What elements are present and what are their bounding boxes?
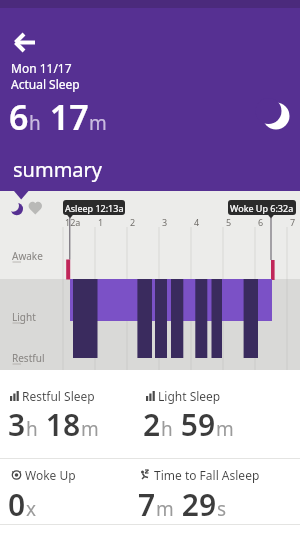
staticText: 6 [258,216,264,228]
staticText: m [89,110,107,136]
staticText: summary [13,156,103,183]
staticText: Restful Sleep [22,388,95,404]
staticText: h [161,416,173,442]
staticText: 0 [8,484,26,525]
staticText: Light [12,310,36,324]
button[interactable] [27,200,45,218]
staticText: 12a [65,216,81,228]
staticText: x [26,496,37,522]
staticText: 18 [38,404,81,445]
button[interactable] [5,200,27,218]
staticText: 29 [174,484,217,525]
staticText: 3 [162,216,168,228]
staticText: 4 [194,216,200,228]
button[interactable] [8,27,42,57]
staticText: 59 [173,404,216,445]
staticText: 7 [290,216,296,228]
button[interactable]: summary [5,152,111,187]
staticText: h [29,110,41,136]
staticText: Mon 11/17 [11,60,72,76]
staticText: Woke Up [25,467,76,483]
staticText: Actual Sleep [11,76,80,92]
staticText: 2 [143,404,161,445]
staticText: 2 [130,216,136,228]
staticText: Awake [12,249,43,263]
staticText: Time to Fall Asleep [154,467,260,483]
staticText: m [81,416,99,442]
staticText: Asleep 12:13a [65,202,124,214]
staticText: h [26,416,38,442]
staticText: 7 [138,484,156,525]
staticText: Light Sleep [158,388,221,404]
staticText: 3 [8,404,26,445]
staticText: Woke Up 6:32a [230,202,294,214]
staticText: 5 [226,216,232,228]
staticText: m [216,416,234,442]
staticText: Restful [12,351,45,365]
staticText: m [156,496,174,522]
staticText: 6 [9,94,29,140]
staticText: 17 [41,94,89,140]
staticText: s [217,496,227,522]
staticText: 1 [98,216,104,228]
